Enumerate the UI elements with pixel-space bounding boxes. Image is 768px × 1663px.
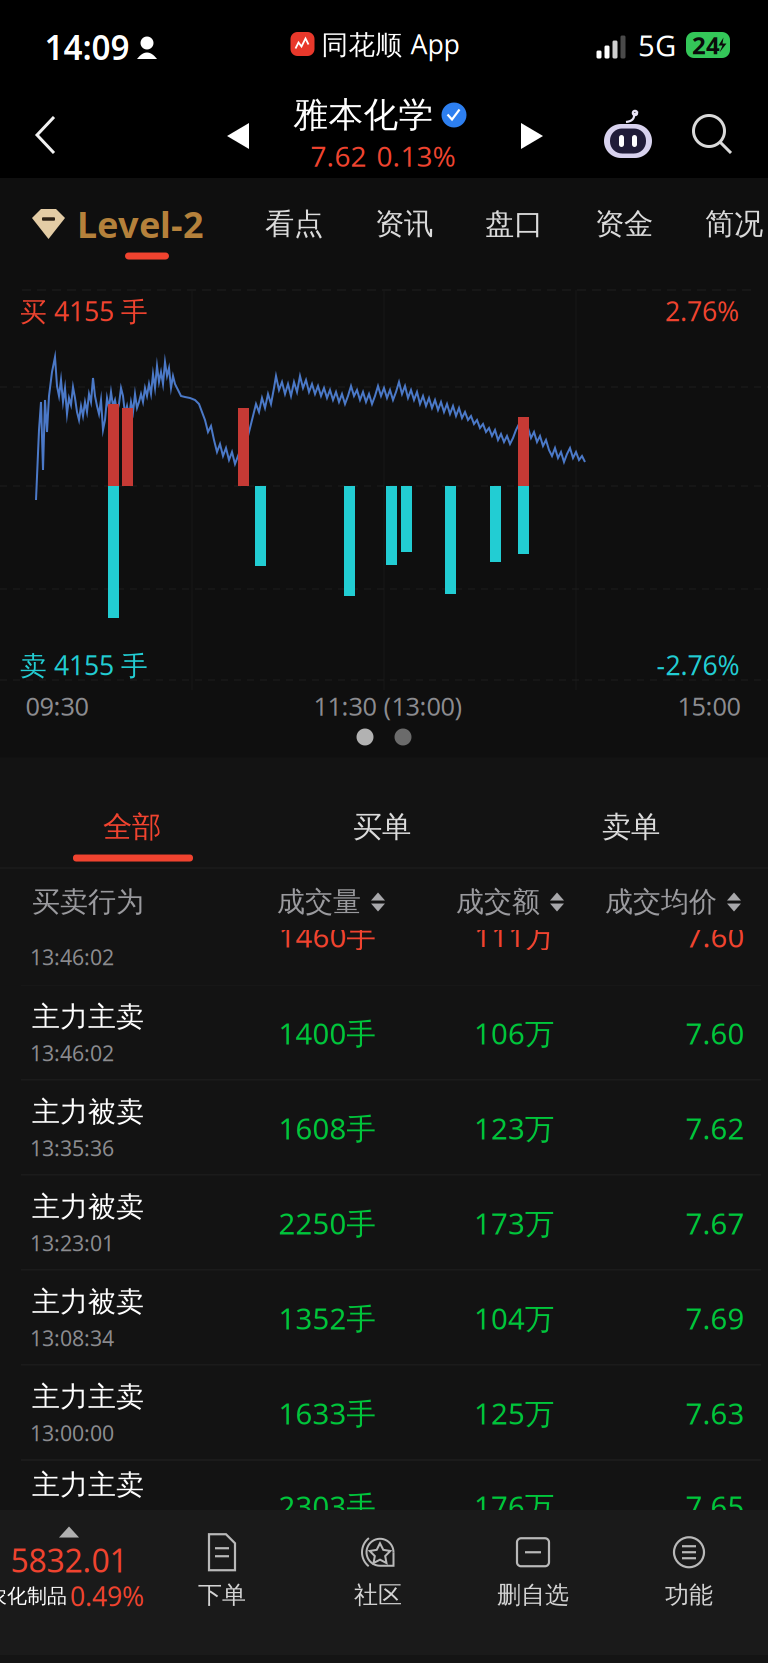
button[interactable]: 主力主卖 bbox=[0, 985, 768, 1080]
staticText: 1352手 bbox=[278, 1298, 375, 1337]
staticText: 删自选 bbox=[497, 1580, 569, 1610]
button[interactable]: 简况 bbox=[686, 186, 768, 262]
button[interactable]: 功能 bbox=[614, 1524, 764, 1616]
staticText: 0.13% bbox=[376, 137, 455, 175]
staticText: 资讯 bbox=[375, 206, 433, 242]
staticText: 7.69 bbox=[685, 1298, 744, 1337]
staticText: 125万 bbox=[474, 1393, 554, 1432]
staticText: 13:35:36 bbox=[30, 1134, 114, 1162]
staticText: -2.76% bbox=[656, 647, 739, 683]
staticText: 104万 bbox=[474, 1298, 554, 1337]
staticText: 卖单 bbox=[602, 809, 660, 845]
staticText: 看点 bbox=[265, 206, 323, 242]
staticText: 买卖行为 bbox=[32, 885, 144, 919]
staticText: 主力主卖 bbox=[32, 1380, 144, 1414]
staticText: 5G bbox=[638, 25, 676, 64]
staticText: 15:00 bbox=[677, 689, 740, 723]
button[interactable]: 下单 bbox=[147, 1524, 297, 1616]
staticText: 123万 bbox=[474, 1108, 554, 1147]
button[interactable]: 盘口 bbox=[466, 186, 562, 262]
button[interactable]: 主力主卖 bbox=[0, 1365, 768, 1460]
staticText: 13:08:34 bbox=[30, 1324, 114, 1352]
staticText: 2.76% bbox=[665, 293, 739, 329]
staticText: 盘口 bbox=[485, 206, 543, 242]
button[interactable]: 资金 bbox=[576, 186, 672, 262]
staticText: Level-2 bbox=[77, 200, 204, 248]
staticText: 买 4155 手 bbox=[20, 293, 148, 329]
staticText: 同花顺 App bbox=[321, 26, 459, 62]
staticText: 成交量 bbox=[277, 885, 361, 919]
button[interactable]: Previous stock bbox=[208, 106, 268, 166]
staticText: 13:46:02 bbox=[30, 1039, 114, 1067]
staticText: 5832.01 bbox=[10, 1539, 127, 1581]
staticText: 农化制品 bbox=[0, 1584, 67, 1608]
staticText: 社区 bbox=[354, 1580, 402, 1610]
staticText: 2303手 bbox=[278, 1486, 375, 1525]
button[interactable]: 删自选 bbox=[458, 1524, 608, 1616]
staticText: 主力主卖 bbox=[32, 1000, 144, 1034]
staticText: 成交额 bbox=[456, 885, 540, 919]
staticText: 买单 bbox=[353, 809, 411, 845]
staticText: 雅本化学 bbox=[293, 94, 433, 136]
staticText: 111万 bbox=[474, 916, 554, 955]
button[interactable]: 社区 bbox=[303, 1524, 453, 1616]
staticText: 成交均价 bbox=[605, 885, 717, 919]
button[interactable]: Search bbox=[679, 101, 745, 167]
staticText: 09:30 bbox=[25, 689, 88, 723]
staticText: 全部 bbox=[103, 809, 161, 845]
button[interactable]: Back bbox=[4, 93, 88, 177]
staticText: 7.67 bbox=[685, 1203, 744, 1242]
button[interactable]: 主力被卖 bbox=[0, 1175, 768, 1270]
staticText: 1400手 bbox=[278, 1013, 375, 1052]
staticText: 主力主卖 bbox=[32, 1468, 144, 1502]
staticText: 主力被卖 bbox=[32, 1285, 144, 1319]
staticText: 176万 bbox=[474, 1486, 554, 1525]
staticText: 下单 bbox=[198, 1580, 246, 1610]
staticText: 2250手 bbox=[278, 1203, 375, 1242]
staticText: 7.62 bbox=[310, 137, 366, 175]
button[interactable]: AI assistant bbox=[602, 110, 654, 158]
button[interactable]: 资讯 bbox=[356, 186, 452, 262]
staticText: 106万 bbox=[474, 1013, 554, 1052]
staticText: 7.60 bbox=[685, 1013, 744, 1052]
button[interactable]: 卖单 bbox=[506, 781, 756, 873]
staticText: 7.60 bbox=[685, 916, 744, 955]
staticText: 简况 bbox=[705, 206, 763, 242]
staticText: 7.65 bbox=[685, 1486, 744, 1525]
button[interactable]: 主力被卖 bbox=[0, 1080, 768, 1175]
button[interactable]: Level-2 bbox=[23, 192, 213, 256]
staticText: 13:46:02 bbox=[30, 943, 114, 971]
staticText: 1633手 bbox=[278, 1393, 375, 1432]
staticText: 卖 4155 手 bbox=[20, 647, 148, 683]
button[interactable]: 全部 bbox=[7, 781, 257, 873]
button[interactable]: 看点 bbox=[246, 186, 342, 262]
staticText: 7.63 bbox=[685, 1393, 744, 1432]
staticText: 1460手 bbox=[278, 916, 375, 955]
button[interactable]: 买单 bbox=[257, 781, 507, 873]
staticText: 主力被卖 bbox=[32, 1095, 144, 1129]
staticText: 13:23:01 bbox=[30, 1229, 114, 1257]
staticText: 功能 bbox=[665, 1580, 713, 1610]
staticText: 24 bbox=[692, 29, 720, 61]
button[interactable]: 主力被卖 bbox=[0, 1270, 768, 1365]
staticText: 资金 bbox=[595, 206, 653, 242]
staticText: 11:30 (13:00) bbox=[313, 689, 462, 723]
staticText: 0.49% bbox=[70, 1578, 144, 1614]
button[interactable]: Next stock bbox=[502, 106, 562, 166]
staticText: 13:00:00 bbox=[30, 1419, 114, 1447]
staticText: 7.62 bbox=[685, 1108, 744, 1147]
staticText: 14:09 bbox=[44, 25, 129, 69]
staticText: 主力被卖 bbox=[32, 1190, 144, 1224]
staticText: 173万 bbox=[474, 1203, 554, 1242]
button[interactable]: 5832.01 bbox=[0, 1518, 205, 1638]
staticText: 1608手 bbox=[278, 1108, 375, 1147]
